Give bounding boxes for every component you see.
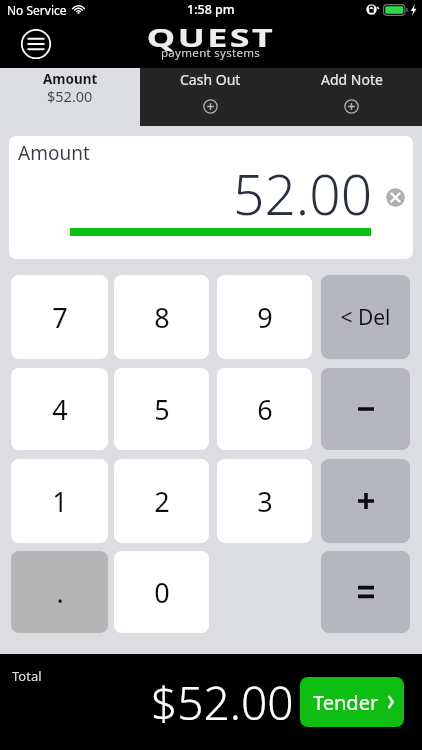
staticText: 4 [52, 391, 68, 428]
staticText: Cash Out [180, 70, 241, 89]
button[interactable]: 0 [114, 551, 209, 633]
button[interactable]: 1 [11, 459, 108, 543]
button[interactable]: Tender [300, 677, 404, 727]
button[interactable]: 8 [114, 275, 209, 359]
staticText: payment systems [161, 45, 261, 61]
button[interactable]: 4 [11, 368, 108, 450]
button[interactable]: Clear amount [386, 188, 405, 207]
staticText: 0 [154, 574, 170, 611]
button[interactable]: 2 [114, 459, 209, 543]
button[interactable]: 3 [217, 459, 312, 543]
button[interactable]: 5 [114, 368, 209, 450]
staticText: $52.00 [47, 86, 93, 106]
staticText: . [56, 574, 64, 611]
staticText: Add Note [321, 70, 383, 89]
staticText: 3 [257, 483, 273, 520]
staticText: Total [12, 667, 42, 685]
staticText: < Del [340, 303, 391, 332]
staticText: 9 [257, 299, 273, 336]
staticText: $52.00 [151, 671, 294, 734]
staticText: Amount [43, 70, 98, 88]
button[interactable]: < Del [321, 275, 410, 359]
staticText: Tender [313, 689, 379, 716]
button[interactable]: 9 [217, 275, 312, 359]
staticText: 8 [154, 299, 170, 336]
staticText: 7 [52, 299, 68, 336]
staticText: 6 [257, 391, 273, 428]
staticText: 52.00 [233, 156, 373, 231]
button[interactable] [321, 551, 410, 633]
button[interactable]: Add Note [281, 68, 422, 126]
staticText: 2 [154, 483, 170, 520]
button[interactable]: Amount [0, 68, 140, 126]
button[interactable] [321, 459, 410, 543]
button[interactable] [321, 368, 410, 450]
staticText: No Service [7, 2, 67, 18]
staticText: QUEST [147, 19, 276, 54]
button[interactable]: . [11, 551, 108, 633]
staticText: 1 [52, 483, 68, 520]
button[interactable]: 7 [11, 275, 108, 359]
button[interactable]: Cash Out [140, 68, 281, 126]
button[interactable]: Menu [13, 21, 59, 67]
staticText: 1:58 pm [187, 1, 235, 18]
button[interactable]: 6 [217, 368, 312, 450]
staticText: 5 [154, 391, 170, 428]
staticText: Amount [18, 140, 90, 166]
